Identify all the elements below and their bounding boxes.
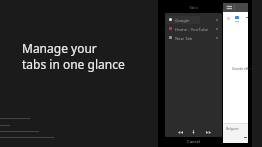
- staticText: Home - YouTube: [175, 26, 209, 32]
- staticText: Google offered in: [232, 66, 257, 70]
- staticText: Tabs: [189, 5, 198, 11]
- button[interactable]: Cancel: [165, 137, 222, 146]
- button[interactable]: New Tab: [165, 33, 222, 42]
- button[interactable]: Google: [165, 15, 222, 24]
- staticText: New Tab: [175, 35, 193, 41]
- staticText: Manage your: [22, 40, 97, 56]
- button[interactable]: New tab: [188, 127, 198, 137]
- staticText: Google: [175, 17, 190, 23]
- staticText: Cancel: [187, 139, 201, 145]
- button[interactable]: Home - YouTube: [165, 24, 222, 33]
- button[interactable]: Close tab: [213, 16, 220, 23]
- staticText: Belgium: [226, 127, 239, 131]
- button[interactable]: Previous tab: [175, 127, 185, 137]
- button[interactable]: Close tab: [213, 34, 220, 41]
- button[interactable]: Next tab: [203, 127, 213, 137]
- button[interactable]: Close tab: [213, 25, 220, 32]
- staticText: tabs in one glance: [22, 56, 125, 72]
